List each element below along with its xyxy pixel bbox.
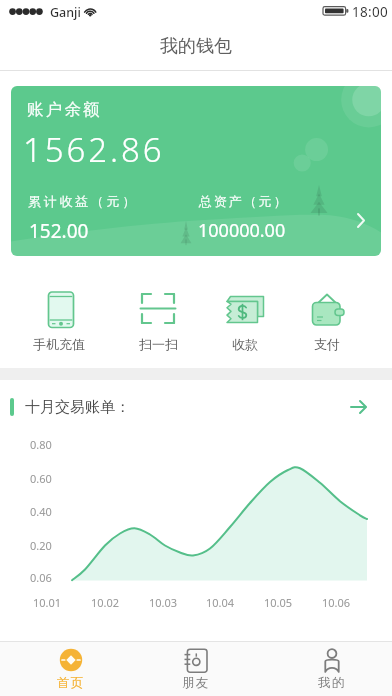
staticText: 0.20 — [30, 538, 52, 553]
button[interactable]: 账户余额 — [11, 86, 381, 256]
staticText: 手机充值 — [33, 336, 85, 352]
button[interactable]: 查看更多 — [344, 393, 372, 421]
staticText: 10.03 — [149, 595, 178, 610]
staticText: 0.06 — [30, 570, 52, 585]
staticText: 18:00 — [352, 3, 389, 21]
staticText: 我的钱包 — [160, 35, 232, 58]
staticText: Ganji — [50, 4, 81, 21]
staticText: 0.40 — [30, 504, 52, 519]
staticText: 我的 — [318, 675, 346, 691]
staticText: 累计收益（元） — [28, 193, 138, 209]
button[interactable]: 扫一扫 — [123, 287, 193, 352]
staticText: 10.04 — [206, 595, 235, 610]
staticText: 152.00 — [29, 218, 89, 244]
button[interactable]: 支付 — [292, 287, 362, 352]
staticText: 扫一扫 — [139, 336, 178, 352]
staticText: 0.60 — [30, 471, 52, 486]
staticText: 收款 — [232, 336, 258, 352]
staticText: 账户余额 — [27, 99, 102, 120]
staticText: 0.80 — [30, 437, 52, 452]
staticText: 总资产（元） — [199, 193, 289, 209]
staticText: 首页 — [57, 675, 85, 691]
staticText: 支付 — [314, 336, 340, 352]
staticText: 十月交易账单： — [25, 398, 130, 417]
staticText: 1562.86 — [23, 127, 165, 172]
staticText: 10.05 — [264, 595, 293, 610]
button[interactable]: 朋友 — [164, 647, 228, 691]
button[interactable]: 收款 — [210, 287, 280, 352]
staticText: 10.06 — [322, 595, 351, 610]
staticText: 朋友 — [182, 675, 210, 691]
staticText: 10.01 — [33, 595, 62, 610]
staticText: 10.02 — [91, 595, 120, 610]
staticText: 100000.00 — [198, 218, 286, 243]
button[interactable]: 首页 — [39, 647, 103, 691]
button[interactable]: 手机充值 — [24, 287, 94, 352]
button[interactable]: 我的 — [300, 647, 364, 691]
